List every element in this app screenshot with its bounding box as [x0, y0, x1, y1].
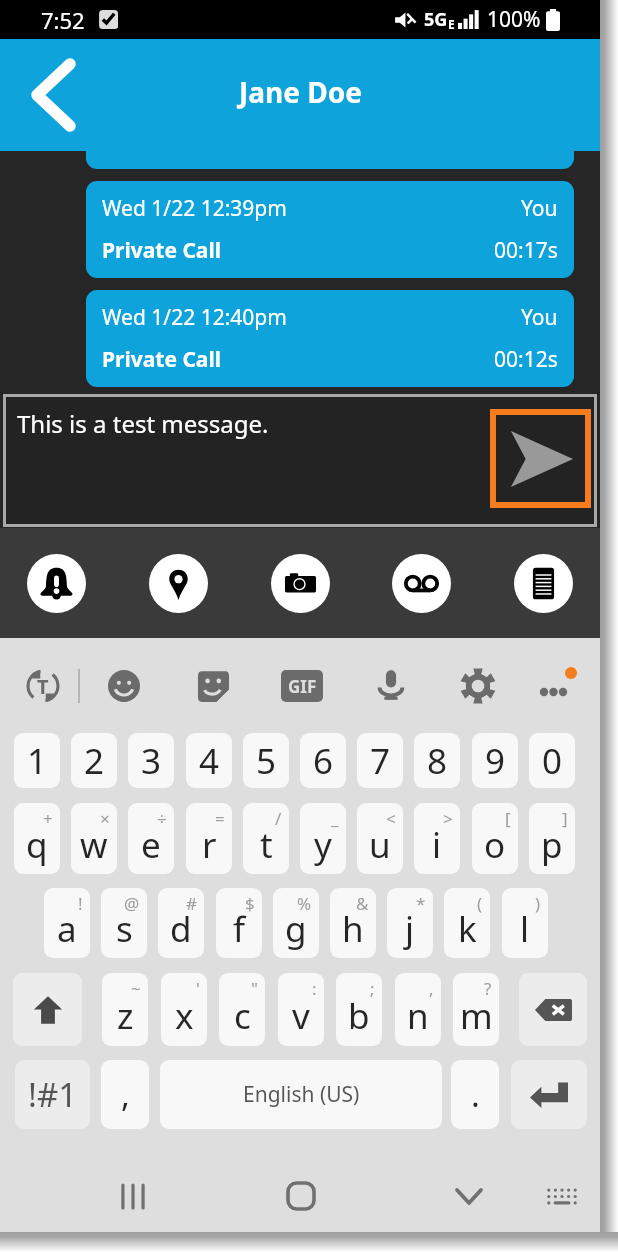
- button[interactable]: _: [300, 803, 346, 874]
- staticText: 1: [27, 737, 48, 785]
- button[interactable]: 6: [300, 733, 346, 788]
- button[interactable]: 1: [14, 733, 60, 788]
- button[interactable]: Hide keyboard: [532, 1160, 618, 1232]
- button[interactable]: !: [44, 888, 90, 958]
- button[interactable]: Wed 1/22 12:39pm: [86, 181, 574, 278]
- staticText: q: [26, 821, 48, 869]
- button[interactable]: Send: [490, 409, 591, 508]
- button[interactable]: @: [101, 888, 147, 958]
- staticText: ": [251, 977, 258, 1000]
- button[interactable]: *: [387, 888, 433, 958]
- staticText: :: [312, 977, 317, 1000]
- button[interactable]: $: [216, 888, 262, 958]
- staticText: 100%: [487, 5, 541, 34]
- staticText: 8: [427, 737, 448, 785]
- staticText: m: [460, 992, 493, 1040]
- button[interactable]: More options: [530, 662, 582, 714]
- button[interactable]: [: [472, 803, 518, 874]
- staticText: 7:52: [41, 5, 85, 35]
- staticText: E: [448, 16, 455, 32]
- button[interactable]: ': [161, 973, 207, 1046]
- staticText: $: [245, 892, 255, 915]
- button[interactable]: Shift: [13, 973, 82, 1046]
- button[interactable]: Recents: [103, 1160, 618, 1232]
- button[interactable]: Wed 1/22 12:40pm: [86, 290, 574, 387]
- button[interactable]: ×: [71, 803, 117, 874]
- staticText: ): [535, 892, 541, 915]
- button[interactable]: GIF: [281, 670, 323, 702]
- button[interactable]: 5: [243, 733, 289, 788]
- button[interactable]: Camera: [271, 554, 330, 613]
- button[interactable]: English (US): [160, 1060, 442, 1129]
- button[interactable]: 7: [357, 733, 403, 788]
- button[interactable]: 2: [71, 733, 117, 788]
- staticText: 5: [256, 737, 277, 785]
- button[interactable]: =: [186, 803, 232, 874]
- button[interactable]: Voice input: [367, 662, 415, 710]
- button[interactable]: Backspace: [519, 973, 587, 1046]
- button[interactable]: /: [243, 803, 289, 874]
- staticText: <: [386, 807, 396, 830]
- button[interactable]: ;: [336, 973, 382, 1046]
- staticText: i: [432, 821, 442, 869]
- button[interactable]: &: [330, 888, 376, 958]
- staticText: You: [521, 303, 558, 332]
- staticText: 6: [313, 737, 334, 785]
- staticText: 5G: [424, 7, 448, 32]
- button[interactable]: Back: [22, 55, 82, 135]
- button[interactable]: !#1: [15, 1060, 90, 1129]
- button[interactable]: Emoji: [100, 662, 148, 710]
- button[interactable]: Enter: [511, 1060, 587, 1129]
- button[interactable]: 3: [128, 733, 174, 788]
- button[interactable]: 4: [186, 733, 232, 788]
- staticText: _: [331, 807, 339, 830]
- staticText: GIF: [288, 675, 317, 698]
- staticText: ,: [429, 977, 434, 1000]
- button[interactable]: 8: [414, 733, 460, 788]
- staticText: e: [141, 821, 161, 869]
- staticText: @: [124, 892, 140, 915]
- staticText: t: [260, 821, 273, 869]
- button[interactable]: >: [414, 803, 460, 874]
- staticText: !: [78, 892, 83, 915]
- button[interactable]: ?: [453, 973, 499, 1046]
- button[interactable]: ÷: [128, 803, 174, 874]
- button[interactable]: ,: [101, 1060, 149, 1129]
- button[interactable]: #: [158, 888, 204, 958]
- button[interactable]: Voicemail: [392, 554, 451, 613]
- button[interactable]: Stickers: [189, 662, 237, 710]
- button[interactable]: %: [273, 888, 319, 958]
- staticText: (: [477, 892, 483, 915]
- staticText: ÷: [157, 807, 167, 830]
- staticText: ,: [121, 1072, 130, 1117]
- staticText: o: [484, 821, 506, 869]
- button[interactable]: :: [278, 973, 324, 1046]
- button[interactable]: Location: [149, 554, 208, 613]
- button[interactable]: Home: [271, 1160, 618, 1232]
- staticText: h: [342, 905, 364, 953]
- staticText: You: [521, 194, 558, 223]
- staticText: *: [416, 892, 426, 915]
- staticText: k: [458, 905, 477, 953]
- button[interactable]: ): [502, 888, 548, 958]
- staticText: Jane Doe: [239, 73, 362, 111]
- button[interactable]: 9: [472, 733, 518, 788]
- button[interactable]: Notes: [514, 554, 573, 613]
- button[interactable]: +: [14, 803, 60, 874]
- button[interactable]: <: [357, 803, 403, 874]
- button[interactable]: Back: [439, 1160, 618, 1232]
- staticText: 00:12s: [494, 345, 558, 374]
- button[interactable]: Settings: [454, 662, 502, 710]
- button[interactable]: 0: [529, 733, 575, 788]
- button[interactable]: ]: [529, 803, 575, 874]
- staticText: y: [314, 821, 332, 869]
- button[interactable]: ": [219, 973, 265, 1046]
- staticText: 7: [370, 737, 391, 785]
- staticText: Wed 1/22 12:40pm: [102, 303, 287, 332]
- button[interactable]: (: [444, 888, 490, 958]
- button[interactable]: Translate: [19, 662, 67, 710]
- button[interactable]: Alert: [27, 554, 86, 613]
- button[interactable]: ~: [102, 973, 148, 1046]
- button[interactable]: ,: [395, 973, 441, 1046]
- button[interactable]: .: [451, 1060, 499, 1129]
